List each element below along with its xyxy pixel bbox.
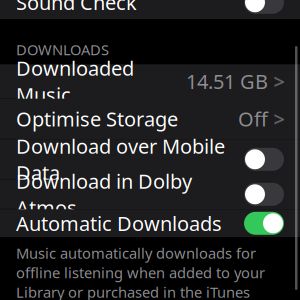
- staticText: Download in Dolby Atmos: [16, 168, 192, 221]
- staticText: >: [273, 105, 284, 132]
- button[interactable]: Automatic Downloads: [0, 209, 300, 237]
- button[interactable]: Download in Dolby Atmos: [0, 180, 300, 209]
- button[interactable]: Optimise Storage: [0, 99, 300, 139]
- staticText: DOWNLOADS: [16, 40, 109, 59]
- staticText: Off: [238, 105, 268, 132]
- staticText: Music automatically downloads for offlin…: [16, 243, 265, 300]
- button[interactable]: Sound Check: [0, 0, 300, 19]
- staticText: >: [273, 68, 284, 95]
- staticText: Optimise Storage: [16, 105, 178, 132]
- staticText: Sound Check: [16, 0, 137, 16]
- staticText: 14.51 GB: [186, 68, 268, 95]
- staticText: Downloaded Music: [16, 55, 134, 108]
- staticText: Download over Mobile Data: [16, 133, 225, 186]
- staticText: Automatic Downloads: [16, 210, 222, 237]
- button[interactable]: Downloaded Music: [0, 64, 300, 98]
- button[interactable]: Download over Mobile Data: [0, 139, 300, 179]
